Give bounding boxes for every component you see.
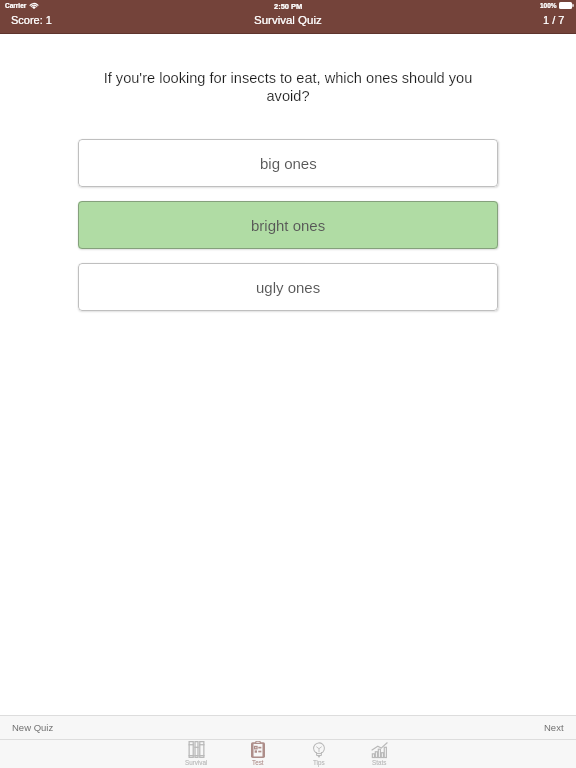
other: Battery xyxy=(559,2,574,9)
staticText: 100% xyxy=(540,2,557,9)
button[interactable]: Stats xyxy=(349,740,410,766)
button[interactable]: ugly ones xyxy=(78,263,498,311)
button[interactable]: Next xyxy=(532,717,576,738)
staticText: Next xyxy=(544,722,564,733)
staticText: Tips xyxy=(313,759,325,766)
button[interactable]: Survival xyxy=(166,740,227,766)
staticText: 2:50 PM xyxy=(274,2,303,10)
staticText: New Quiz xyxy=(12,722,54,733)
staticText: big ones xyxy=(260,155,317,172)
staticText: Score: 1 xyxy=(11,14,52,26)
staticText: ugly ones xyxy=(256,279,321,296)
button[interactable]: Tips xyxy=(288,740,349,766)
staticText: Survival xyxy=(185,759,208,766)
staticText: Stats xyxy=(372,759,387,766)
staticText: Test xyxy=(252,759,264,766)
staticText: bright ones xyxy=(251,217,326,234)
staticText: 1 / 7 xyxy=(543,14,565,26)
button[interactable]: big ones xyxy=(78,139,498,187)
staticText: Carrier xyxy=(5,2,27,9)
other: Wi-Fi xyxy=(30,3,38,9)
button[interactable]: New Quiz xyxy=(0,717,66,738)
staticText: Survival Quiz xyxy=(254,14,322,27)
button[interactable]: bright ones xyxy=(78,201,498,249)
button[interactable]: Test xyxy=(227,740,288,766)
staticText: If you're looking for insects to eat, wh… xyxy=(93,70,483,105)
